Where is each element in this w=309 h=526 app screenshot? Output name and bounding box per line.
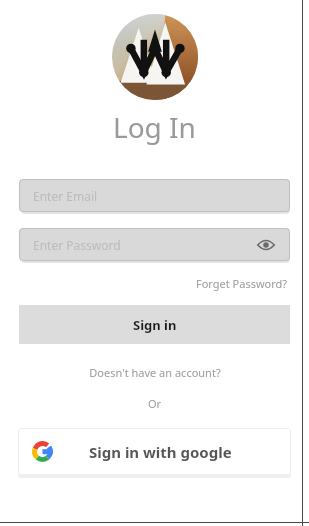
staticText: Forget Password? xyxy=(196,276,288,291)
staticText: Log In xyxy=(113,108,196,146)
staticText: Sign in xyxy=(133,316,177,334)
staticText: Enter Password xyxy=(33,237,256,253)
staticText: Enter Email xyxy=(33,188,276,204)
button[interactable]: Doesn't have an account? xyxy=(83,363,227,382)
button[interactable]: Sign in with google xyxy=(18,428,291,475)
staticText: Sign in with google xyxy=(89,442,232,462)
button[interactable]: Sign in xyxy=(19,305,290,344)
staticText: Doesn't have an account? xyxy=(89,365,221,380)
staticText: Or xyxy=(148,396,162,411)
button[interactable]: Forget Password? xyxy=(194,273,290,294)
button[interactable]: Show password xyxy=(256,235,276,255)
button[interactable]: Enter Password xyxy=(19,228,290,261)
button[interactable]: Enter Email xyxy=(19,179,290,212)
